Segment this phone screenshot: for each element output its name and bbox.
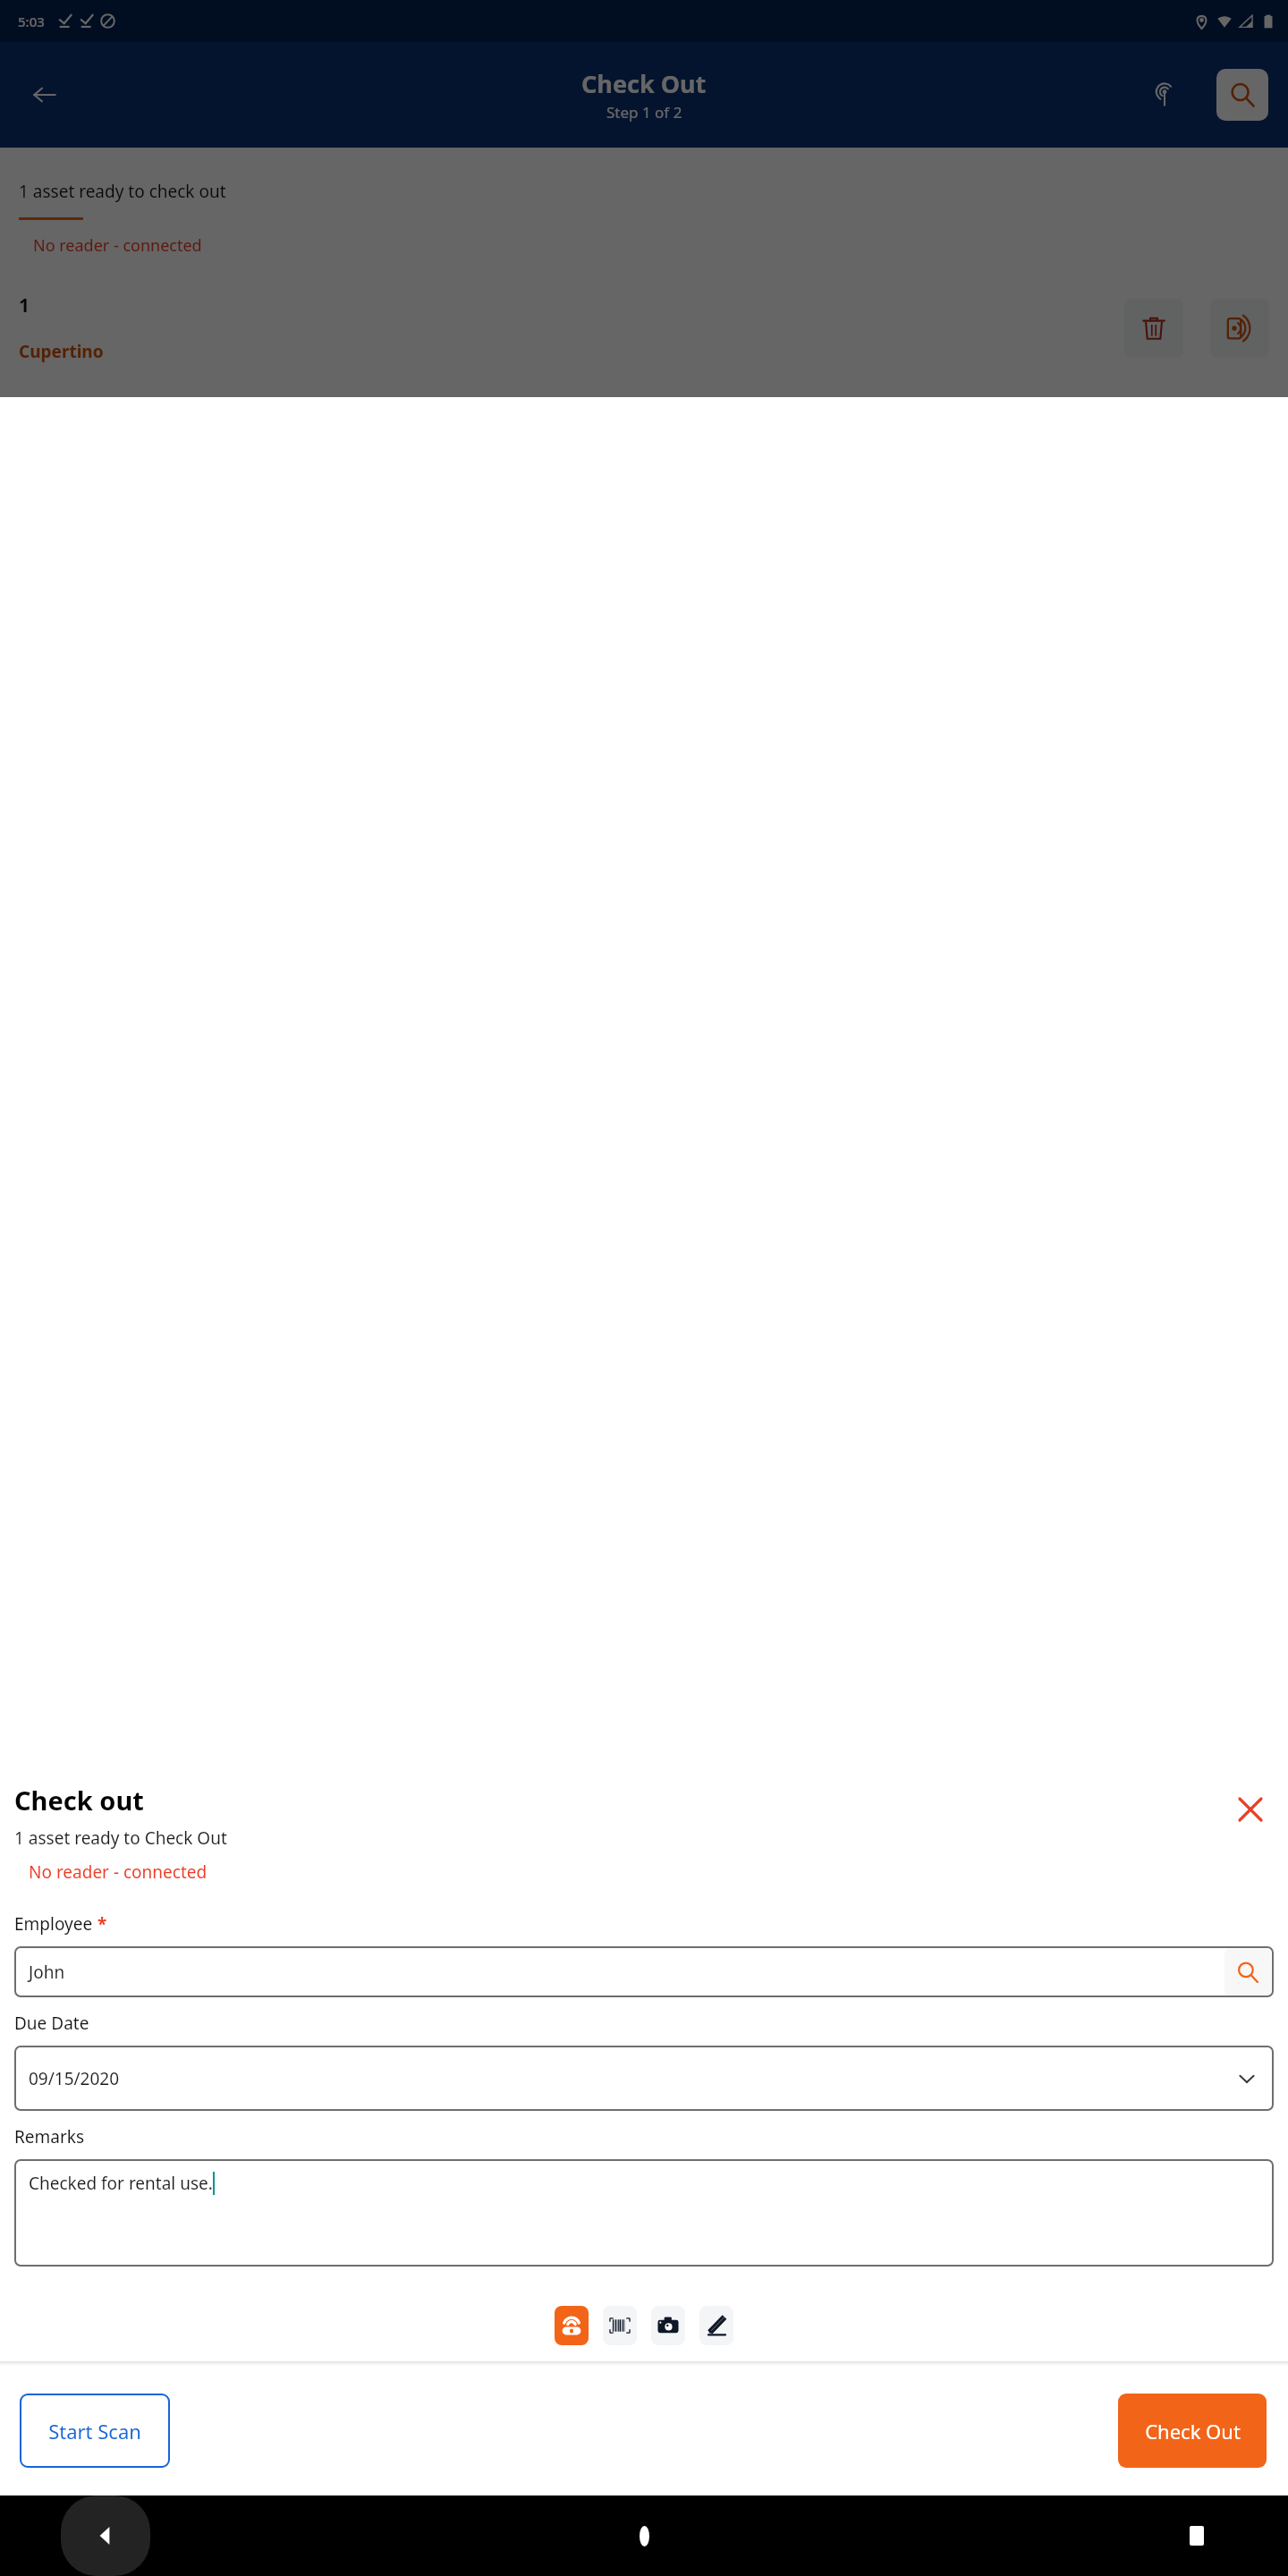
staticText: Step 1 of 2 <box>606 102 682 123</box>
staticText: Check Out <box>581 67 707 100</box>
button[interactable]: 09/15/2020 <box>14 2046 1274 2111</box>
button[interactable]: Home <box>617 2509 671 2563</box>
staticText: Employee <box>14 1912 93 1936</box>
button[interactable]: Delete <box>1124 299 1183 358</box>
button[interactable]: Back <box>23 73 66 116</box>
staticText: 1 asset ready to Check Out <box>14 1826 227 1850</box>
staticText: Check out <box>14 1783 144 1818</box>
button[interactable]: RFID reader <box>1145 75 1184 114</box>
staticText: Check Out <box>1145 2418 1241 2445</box>
button[interactable]: Search <box>1216 69 1268 121</box>
button[interactable]: RFID scan <box>555 2306 589 2345</box>
staticText: 1 <box>19 292 30 318</box>
button[interactable]: Check Out <box>1118 2394 1267 2468</box>
button[interactable]: Recents <box>1170 2509 1224 2563</box>
button[interactable]: Back <box>61 2495 150 2576</box>
button[interactable]: Start Scan <box>20 2394 170 2468</box>
staticText: Remarks <box>14 2125 85 2148</box>
button[interactable]: Read tag <box>1210 299 1269 358</box>
staticText: Cupertino <box>19 340 104 363</box>
staticText: Start Scan <box>48 2418 141 2445</box>
button[interactable]: Manual entry <box>699 2306 733 2345</box>
staticText: John <box>29 1961 65 1984</box>
staticText: Due Date <box>14 2012 89 2035</box>
staticText: 5:03 <box>18 13 45 30</box>
button[interactable]: Close <box>1227 1786 1274 1833</box>
button[interactable]: John <box>14 1946 1274 1997</box>
staticText: 09/15/2020 <box>29 2067 120 2090</box>
button[interactable]: Barcode scan <box>603 2306 637 2345</box>
button[interactable]: Search employee <box>1224 1949 1271 1996</box>
button[interactable]: Checked for rental use. <box>14 2159 1274 2267</box>
staticText: Checked for rental use. <box>29 2172 213 2195</box>
button[interactable]: Camera <box>651 2306 685 2345</box>
staticText: No reader - connected <box>29 1860 208 1884</box>
staticText: 1 asset ready to check out <box>19 180 226 203</box>
staticText: * <box>93 1912 107 1936</box>
staticText: No reader - connected <box>33 234 202 257</box>
